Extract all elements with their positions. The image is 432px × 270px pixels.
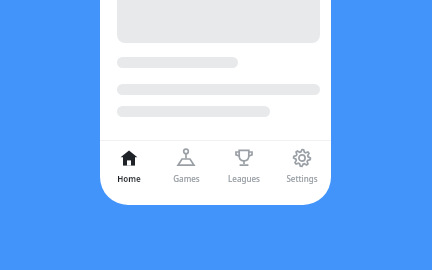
button[interactable]: Settings: [273, 141, 331, 205]
staticText: Leagues: [228, 173, 260, 184]
button[interactable]: Leagues: [215, 141, 273, 205]
staticText: Settings: [286, 173, 318, 184]
staticText: Home: [117, 173, 141, 184]
button[interactable]: Home: [100, 141, 157, 205]
staticText: Games: [173, 173, 200, 184]
button[interactable]: Games: [157, 141, 215, 205]
